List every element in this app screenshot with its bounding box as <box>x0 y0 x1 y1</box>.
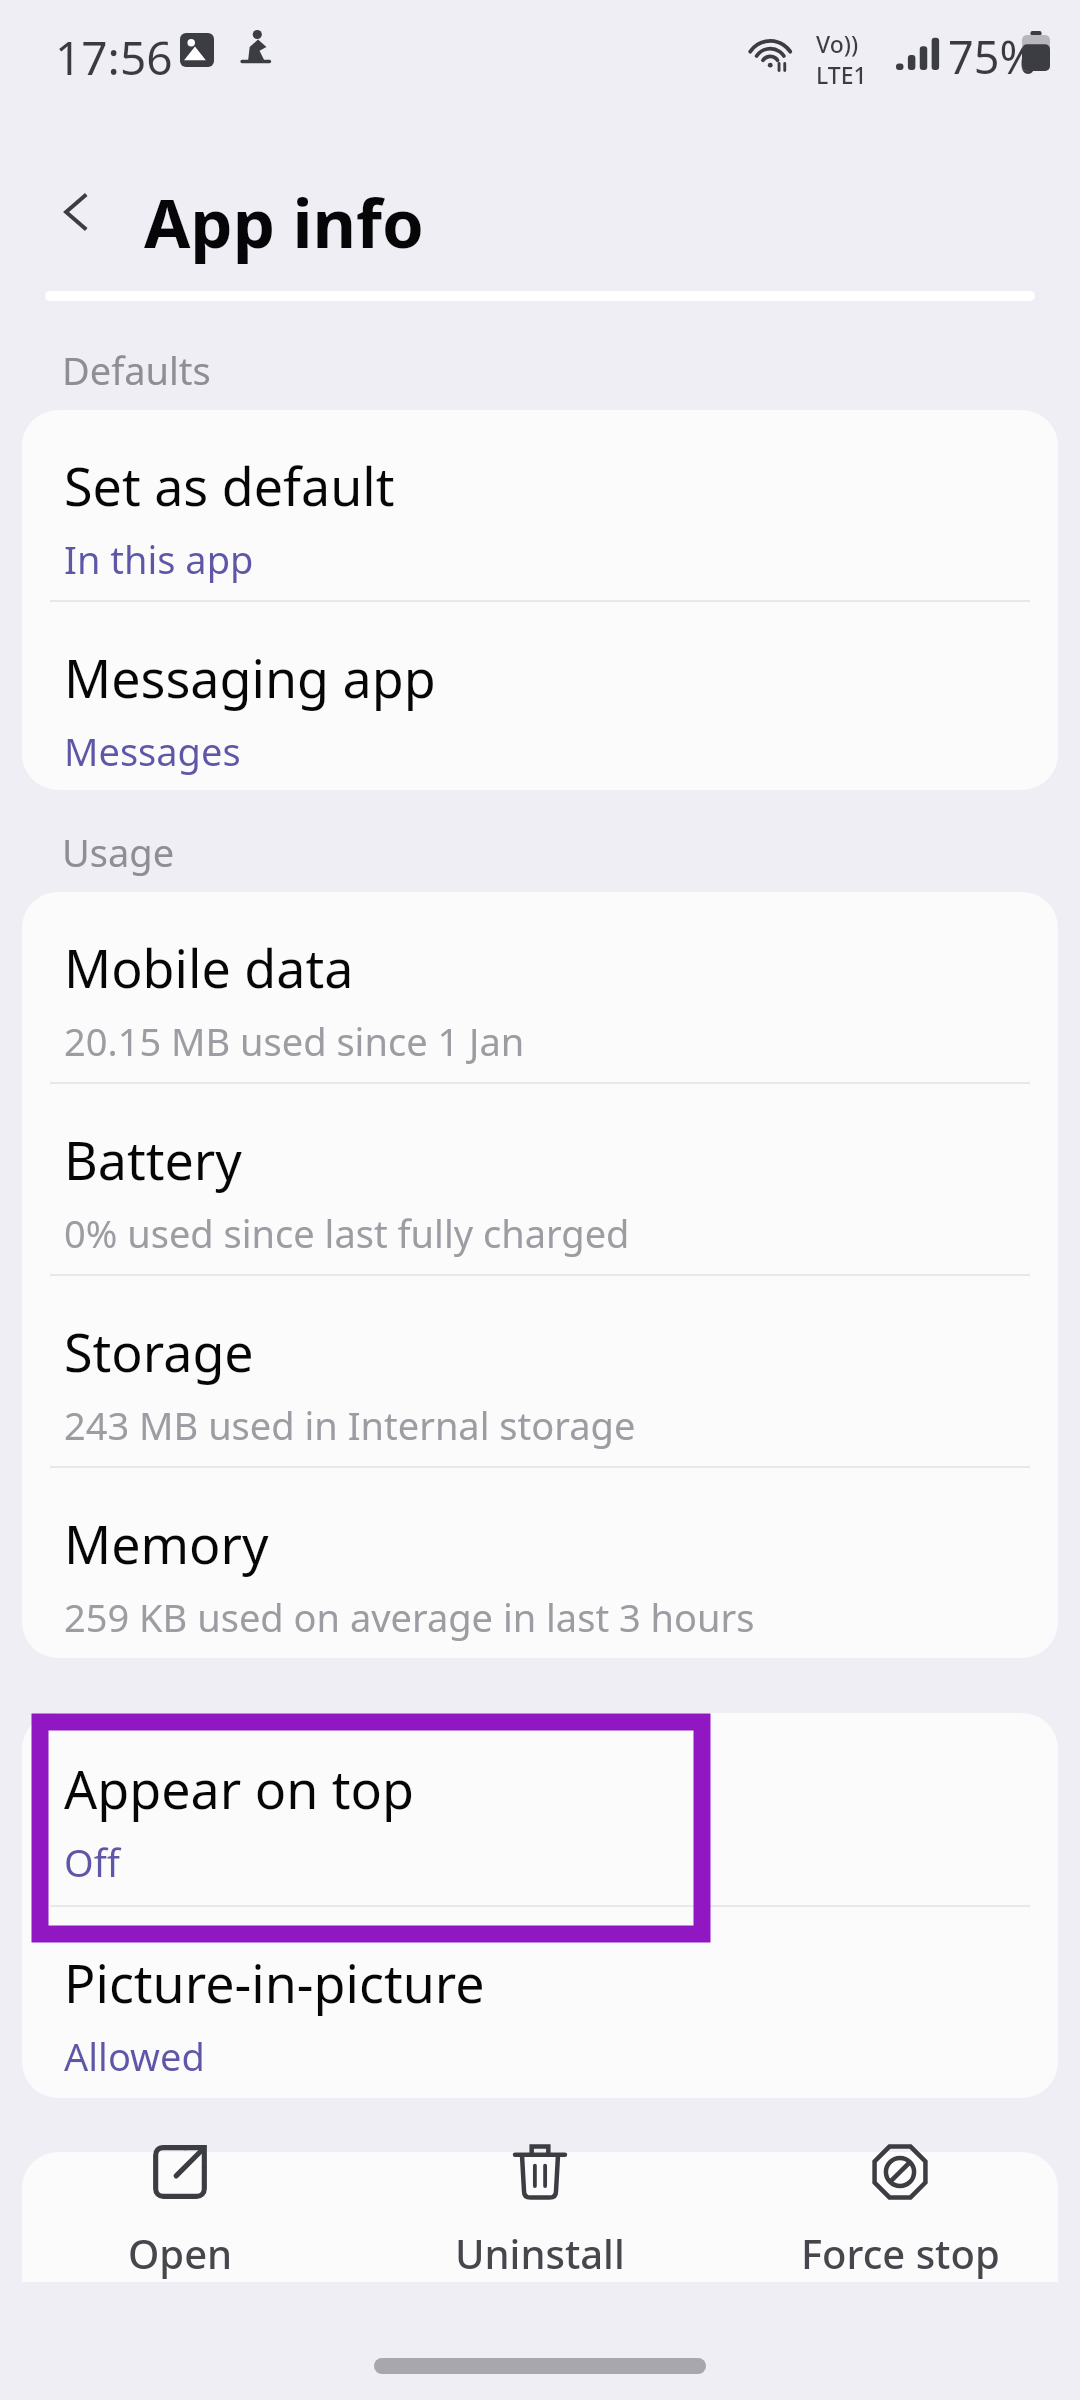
staticText: Allowed <box>64 2030 205 2082</box>
staticText: 75% <box>948 26 1037 87</box>
staticText: Open <box>128 2226 233 2280</box>
staticText: Uninstall <box>455 2226 625 2280</box>
staticText: 0% used since last fully charged <box>64 1207 630 1259</box>
staticText: App info <box>144 176 424 267</box>
button[interactable]: Memory <box>22 1468 1058 1658</box>
button[interactable]: Uninstall <box>360 2100 720 2328</box>
staticText: Vo)) <box>816 28 859 59</box>
staticText: Mobile data <box>64 932 354 1003</box>
staticText: LTE1 <box>816 59 867 90</box>
button[interactable]: Storage <box>22 1276 1058 1468</box>
staticText: Messages <box>64 725 241 777</box>
button[interactable]: Mobile data <box>22 892 1058 1084</box>
staticText: Memory <box>64 1508 269 1579</box>
staticText: Messaging app <box>64 642 436 713</box>
staticText: Appear on top <box>64 1753 415 1824</box>
button[interactable]: Battery <box>22 1084 1058 1276</box>
button[interactable]: Set as default <box>22 410 1058 602</box>
staticText: Defaults <box>62 344 211 396</box>
staticText: Set as default <box>64 450 395 521</box>
button[interactable]: Open <box>0 2100 360 2328</box>
staticText: 243 MB used in Internal storage <box>64 1399 636 1451</box>
button[interactable] <box>22 2152 1058 2282</box>
staticText: In this app <box>64 533 254 585</box>
button[interactable]: Messaging app <box>22 602 1058 790</box>
button[interactable]: Force stop <box>720 2100 1080 2328</box>
button[interactable]: Picture-in-picture <box>22 1907 1058 2098</box>
staticText: 259 KB used on average in last 3 hours <box>64 1591 755 1643</box>
staticText: Off <box>64 1836 120 1888</box>
staticText: Usage <box>62 826 175 878</box>
staticText: Picture-in-picture <box>64 1947 485 2018</box>
staticText: Storage <box>64 1316 254 1387</box>
staticText: 17:56 <box>55 26 173 89</box>
staticText: Battery <box>64 1124 242 1195</box>
button[interactable]: Appear on top <box>22 1713 1058 1905</box>
staticText: Force stop <box>801 2226 1000 2280</box>
button[interactable]: Back <box>34 168 122 256</box>
staticText: 20.15 MB used since 1 Jan <box>64 1015 525 1067</box>
